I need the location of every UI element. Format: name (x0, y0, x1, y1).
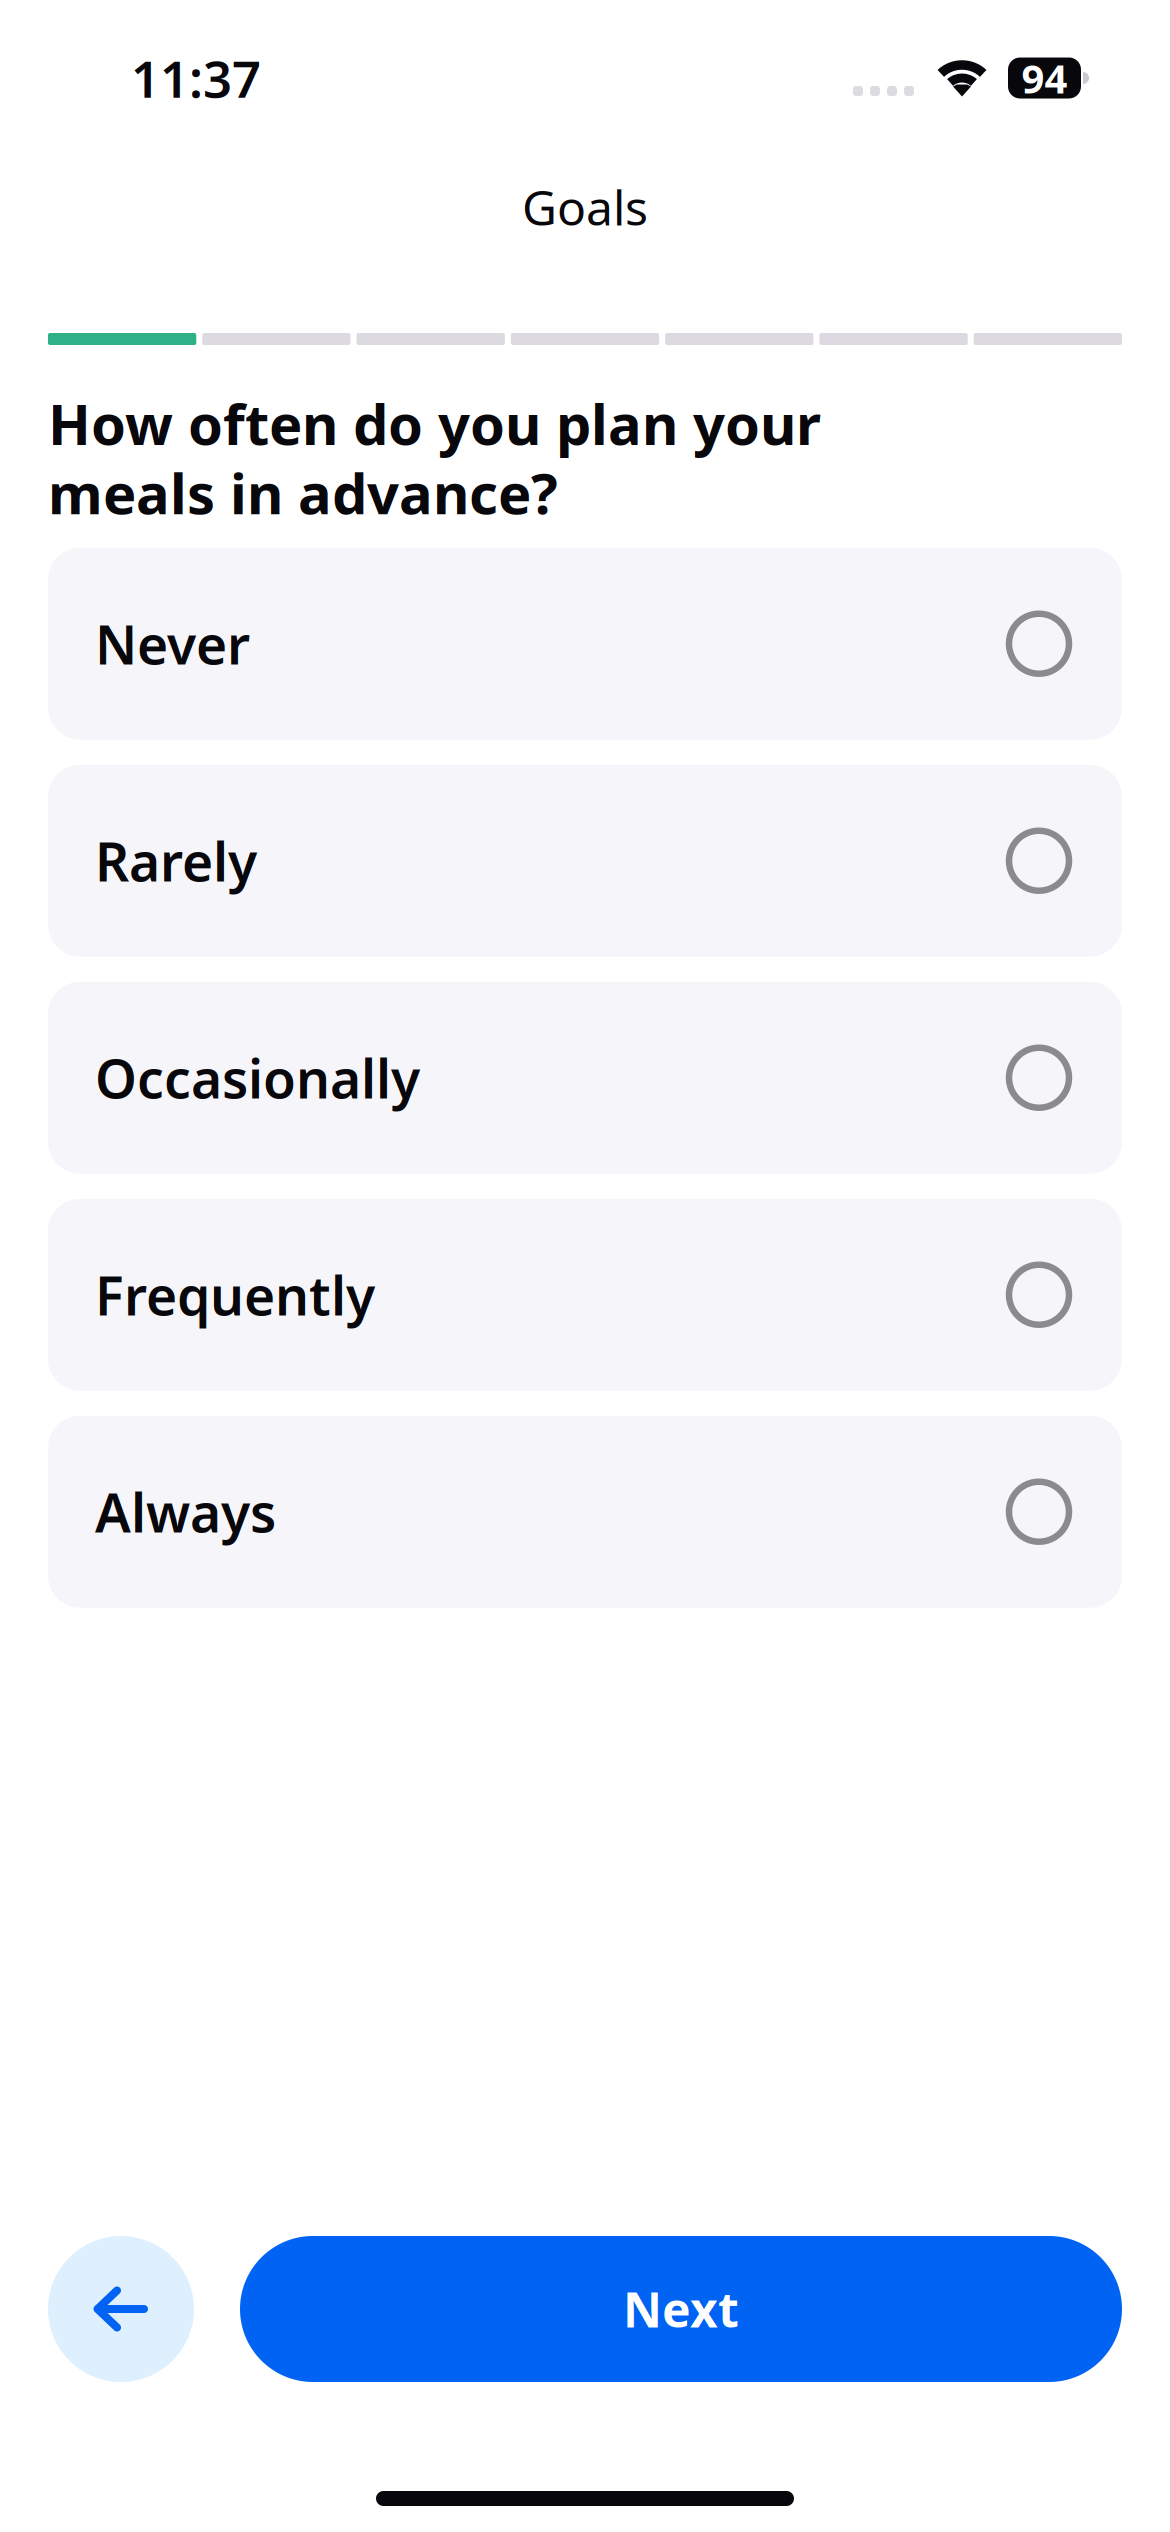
button[interactable]: Always (48, 1416, 1122, 1608)
staticText: Always (95, 1476, 276, 1547)
button[interactable]: Next (240, 2236, 1122, 2382)
staticText: Frequently (95, 1259, 375, 1330)
button[interactable]: Rarely (48, 765, 1122, 957)
staticText: Occasionally (95, 1042, 420, 1113)
staticText: Next (623, 2277, 739, 2341)
button[interactable]: Occasionally (48, 982, 1122, 1174)
staticText: Never (95, 608, 250, 679)
button[interactable]: Back (48, 2236, 194, 2382)
button[interactable]: Frequently (48, 1199, 1122, 1391)
staticText: 94 (1021, 51, 1067, 104)
staticText: Goals (522, 175, 648, 239)
staticText: How often do you plan your meals in adva… (48, 386, 821, 530)
staticText: Rarely (95, 825, 257, 896)
staticText: 11:37 (131, 44, 261, 112)
button[interactable]: Never (48, 548, 1122, 740)
